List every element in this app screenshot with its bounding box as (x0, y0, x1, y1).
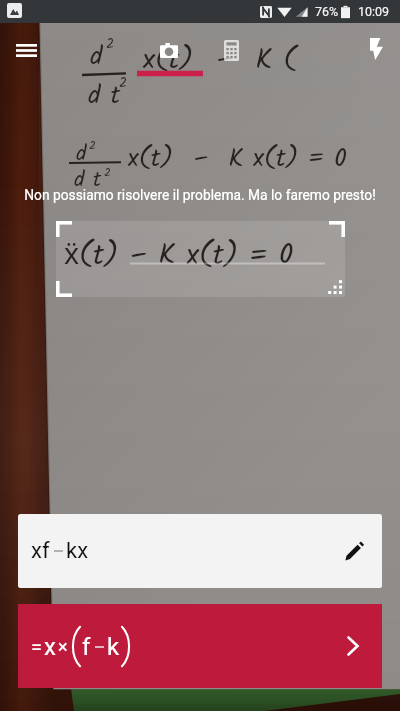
staticText: × (58, 636, 68, 657)
button[interactable]: Flash (357, 30, 395, 68)
staticText: 2 (104, 163, 111, 182)
staticText: = (31, 635, 42, 658)
staticText: d t (74, 164, 102, 197)
button[interactable]: xf (18, 514, 382, 588)
staticText: 2 (119, 72, 128, 94)
staticText: 10:09 (358, 4, 390, 19)
button[interactable]: Edit (340, 537, 368, 565)
staticText: Non possiamo risolvere il problema. Ma l… (0, 187, 400, 203)
staticText: d (90, 37, 103, 77)
staticText: 2 (89, 136, 96, 155)
staticText: d (76, 138, 87, 171)
staticText: x(t) – K x(t) = 0 (128, 139, 347, 179)
button[interactable]: = (18, 604, 382, 688)
staticText: x (44, 633, 56, 661)
staticText: 76% (315, 4, 339, 19)
staticText: f (82, 633, 91, 661)
staticText: kx (66, 538, 89, 564)
button[interactable]: Show steps (340, 633, 366, 659)
button[interactable]: Scan region (56, 221, 345, 297)
staticText: xf (31, 538, 50, 564)
staticText: 2 (106, 33, 115, 55)
staticText: ẍ(t) – K x(t) = 0 (64, 234, 294, 280)
staticText: d t (88, 76, 121, 116)
button[interactable]: Calculator (212, 31, 250, 69)
staticText: x(t) – K ( (143, 38, 297, 83)
button[interactable]: Camera (150, 31, 188, 69)
button[interactable]: Menu (6, 30, 46, 70)
staticText: k (107, 633, 120, 661)
